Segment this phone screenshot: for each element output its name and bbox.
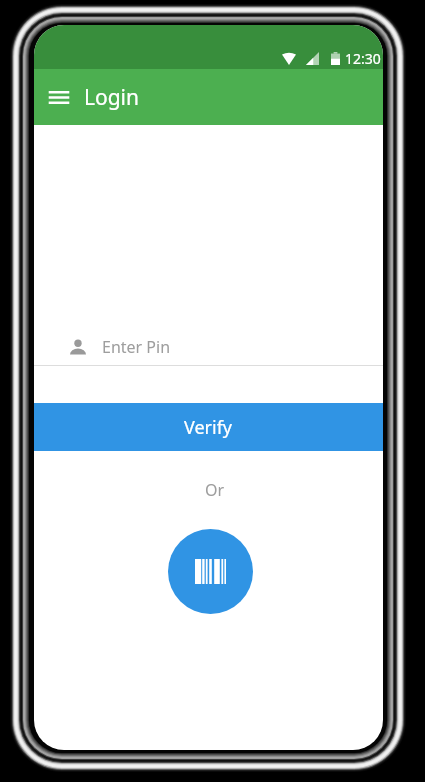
button[interactable]: Scan barcode — [168, 529, 253, 614]
staticText: Verify — [184, 415, 233, 440]
button[interactable]: Open navigation menu — [39, 77, 79, 117]
staticText: Enter Pin — [102, 336, 171, 358]
staticText: Or — [40, 479, 383, 501]
button[interactable]: Verify — [34, 403, 383, 451]
staticText: Login — [84, 83, 140, 112]
staticText: 12:30 — [345, 49, 381, 68]
